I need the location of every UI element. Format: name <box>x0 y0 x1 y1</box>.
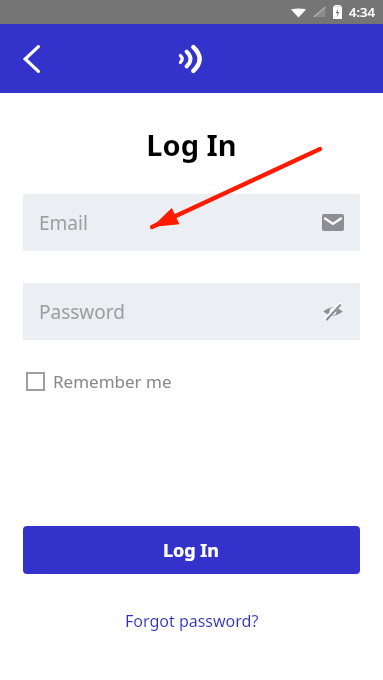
button[interactable]: Email <box>23 194 360 251</box>
button[interactable]: Log In <box>23 526 360 574</box>
staticText: Remember me <box>53 370 172 393</box>
staticText: 4:34 <box>349 3 375 21</box>
staticText: Forgot password? <box>125 610 259 632</box>
button[interactable]: Back <box>8 35 56 83</box>
staticText: Log In <box>0 125 383 164</box>
button[interactable]: Forgot password? <box>119 604 265 638</box>
staticText: Log In <box>163 538 220 563</box>
button[interactable]: Password <box>23 283 360 340</box>
button[interactable]: Remember me <box>23 366 176 397</box>
staticText: Email <box>39 210 322 236</box>
staticText: Password <box>39 299 322 325</box>
